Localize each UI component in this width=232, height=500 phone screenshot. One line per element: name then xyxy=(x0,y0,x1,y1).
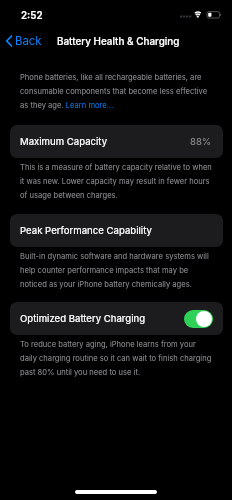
button[interactable]: Peak Performance Capability xyxy=(10,214,223,247)
staticText: Optimized Battery Charging xyxy=(20,313,146,325)
button[interactable]: Back xyxy=(4,33,42,49)
staticText: Built-in dynamic software and hardware s… xyxy=(20,248,213,290)
button[interactable]: Maximum Capacity xyxy=(10,125,223,158)
staticText: This is a measure of battery capacity re… xyxy=(20,159,213,201)
staticText: Phone batteries, like all rechargeable b… xyxy=(20,69,213,111)
staticText: Maximum Capacity xyxy=(20,136,108,148)
staticText: To reduce battery aging, iPhone learns f… xyxy=(20,336,213,378)
staticText: Battery Health & Charging xyxy=(57,35,180,47)
staticText: 2:52 xyxy=(21,10,43,22)
staticText: Back xyxy=(15,34,42,48)
staticText: 88% xyxy=(190,136,212,148)
button[interactable]: Optimized Battery Charging xyxy=(10,302,223,335)
button[interactable]: Optimized Battery Charging xyxy=(184,310,213,328)
staticText: Peak Performance Capability xyxy=(20,225,152,237)
